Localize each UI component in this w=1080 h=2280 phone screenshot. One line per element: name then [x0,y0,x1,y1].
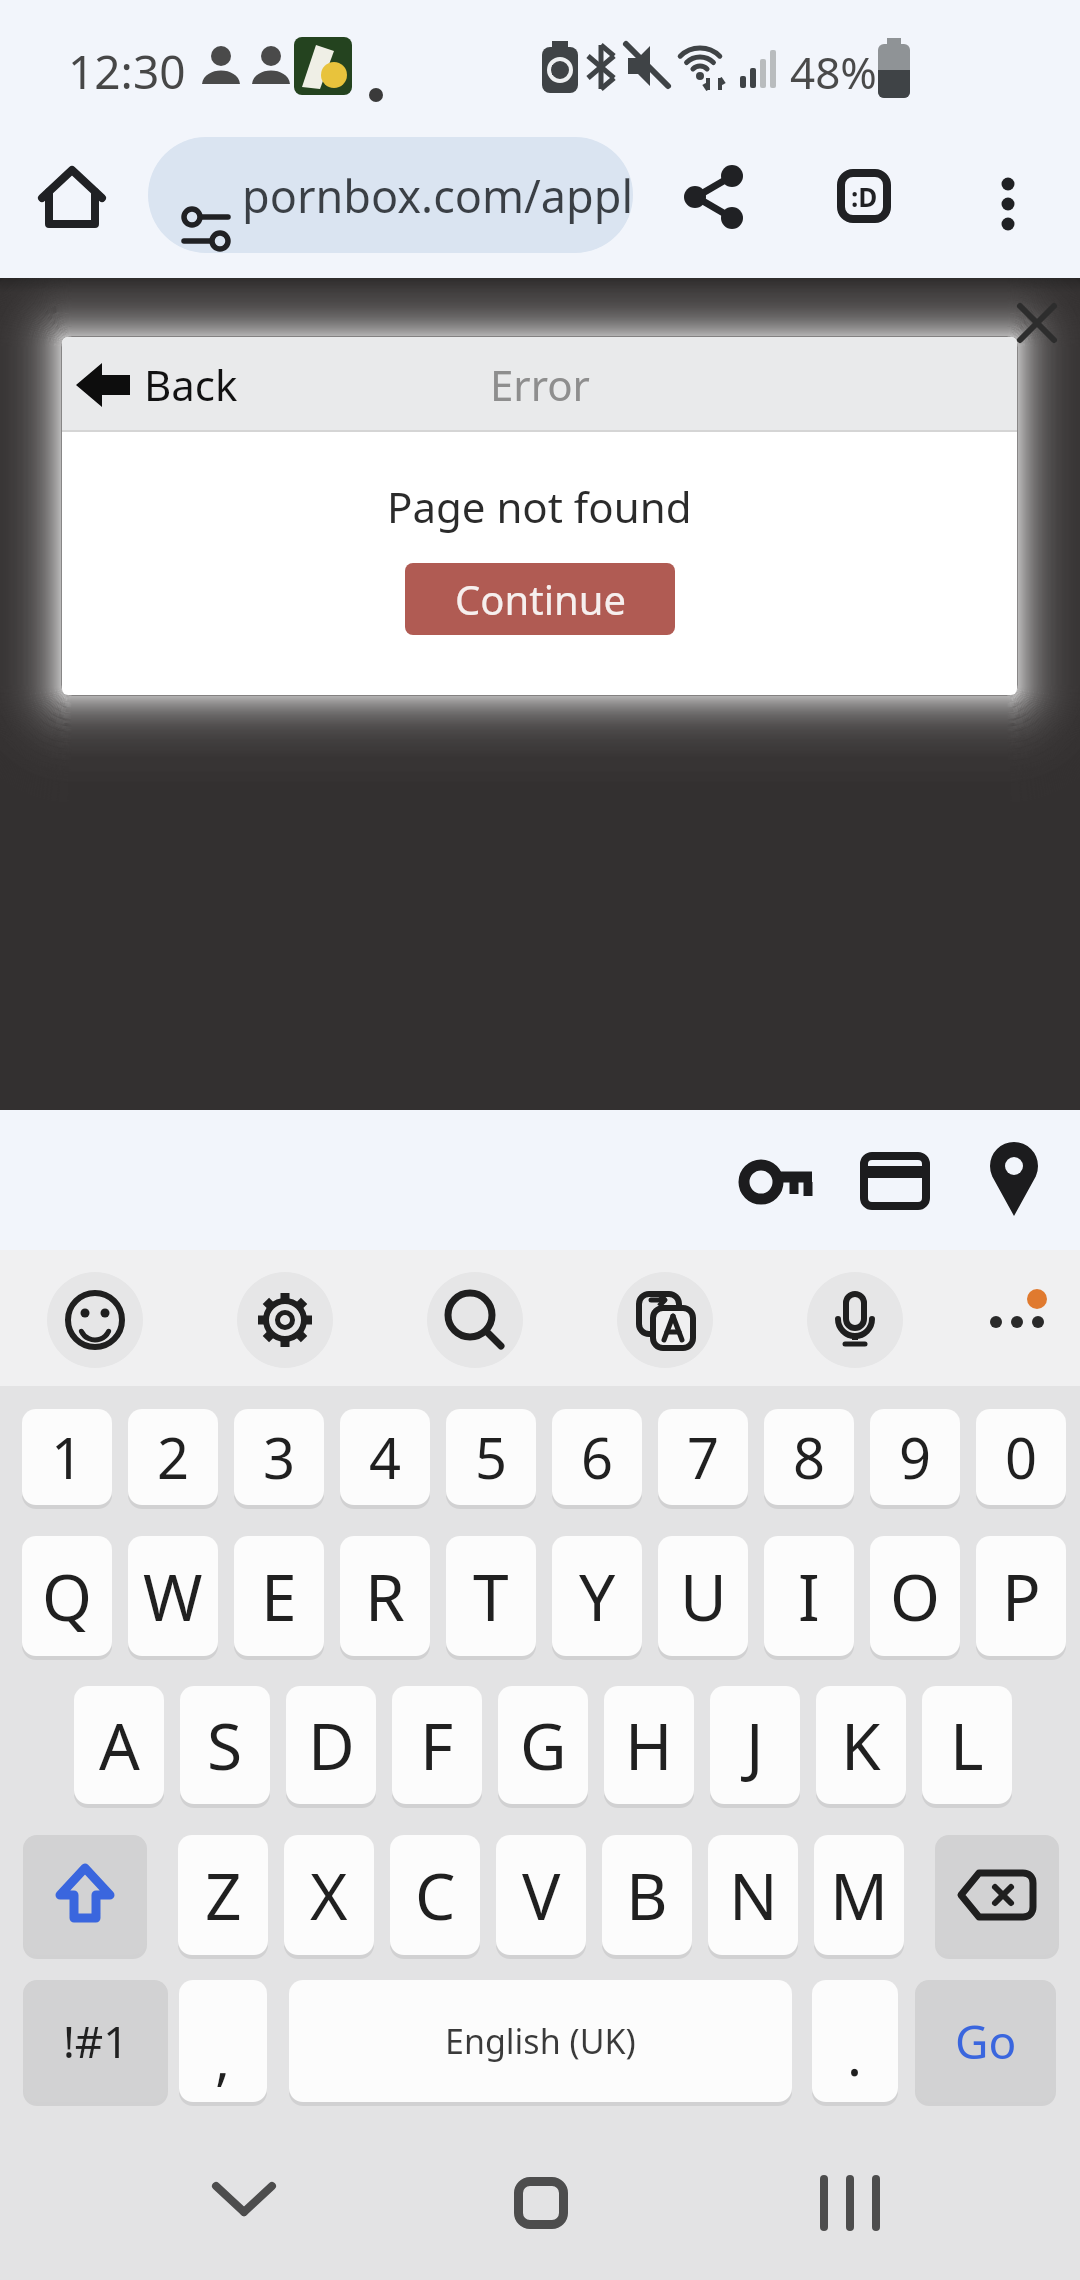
button[interactable] [36,160,108,232]
button[interactable]: 7 [658,1409,748,1505]
button[interactable]: Go [915,1980,1056,2102]
button[interactable]: 6 [552,1409,642,1505]
button[interactable] [975,1290,1065,1350]
staticText: H [625,1702,673,1789]
button[interactable]: 1 [22,1409,112,1505]
staticText: . [847,2016,863,2092]
button[interactable] [862,1146,934,1218]
button[interactable]: G [498,1686,588,1804]
button[interactable]: 0 [976,1409,1066,1505]
button[interactable]: . [812,1980,898,2102]
button[interactable]: Continue [405,563,675,635]
button[interactable]: F [392,1686,482,1804]
button[interactable] [514,2177,568,2229]
button[interactable]: pornbox.com/applica [148,137,633,253]
button[interactable]: 5 [446,1409,536,1505]
button[interactable] [820,2177,880,2229]
button[interactable] [23,1835,147,1955]
button[interactable]: V [496,1835,586,1955]
staticText: Z [205,1852,242,1939]
button[interactable] [427,1272,523,1368]
staticText: !#1 [63,2011,129,2071]
staticText: D [308,1702,355,1789]
button[interactable]: 8 [764,1409,854,1505]
staticText: B [626,1852,668,1939]
staticText: A [99,1702,140,1789]
button[interactable]: 9 [870,1409,960,1505]
button[interactable]: Back [76,337,238,432]
staticText: 8 [793,1419,826,1495]
button[interactable]: , [179,1980,267,2102]
button[interactable]: 3 [234,1409,324,1505]
button[interactable] [935,1835,1059,1955]
button[interactable] [237,1272,333,1368]
staticText: Go [955,2010,1017,2073]
button[interactable]: Q [22,1536,112,1656]
staticText: G [520,1702,567,1789]
staticText: U [680,1553,727,1640]
button[interactable] [617,1272,713,1368]
button[interactable]: X [284,1835,374,1955]
staticText: M [830,1852,889,1939]
staticText: 4 [369,1419,402,1495]
staticText: 7 [687,1419,720,1495]
staticText: I [798,1553,820,1640]
button[interactable]: D [286,1686,376,1804]
button[interactable] [744,1146,816,1218]
button[interactable] [807,1272,903,1368]
staticText: , [215,2020,231,2096]
staticText: Page not found [387,478,692,535]
button[interactable]: 2 [128,1409,218,1505]
button[interactable]: English (UK) [289,1980,792,2102]
button[interactable] [1014,300,1060,346]
button[interactable]: H [604,1686,694,1804]
button[interactable] [215,2185,273,2215]
button[interactable]: K [816,1686,906,1804]
staticText: 0 [1005,1419,1038,1495]
staticText: 48% [790,42,877,102]
button[interactable]: I [764,1536,854,1656]
button[interactable]: B [602,1835,692,1955]
staticText: Y [579,1553,616,1640]
button[interactable]: M [814,1835,904,1955]
button[interactable]: U [658,1536,748,1656]
staticText: 5 [475,1419,508,1495]
staticText: X [310,1852,348,1939]
button[interactable]: :D [837,169,891,223]
button[interactable]: !#1 [23,1980,168,2102]
button[interactable]: Z [178,1835,268,1955]
staticText: Q [42,1553,92,1640]
button[interactable]: W [128,1536,218,1656]
button[interactable] [684,166,744,228]
staticText: English (UK) [445,2018,636,2064]
staticText: Back [144,356,238,413]
staticText: C [415,1852,456,1939]
button[interactable]: L [922,1686,1012,1804]
staticText: F [420,1702,454,1789]
button[interactable]: E [234,1536,324,1656]
staticText: :D [851,179,878,214]
button[interactable]: C [390,1835,480,1955]
staticText: E [261,1553,297,1640]
button[interactable]: 4 [340,1409,430,1505]
button[interactable]: R [340,1536,430,1656]
button[interactable] [986,1140,1058,1220]
staticText: N [729,1852,778,1939]
staticText: L [950,1702,984,1789]
button[interactable]: P [976,1536,1066,1656]
button[interactable]: A [74,1686,164,1804]
staticText: V [522,1852,561,1939]
staticText: K [841,1702,881,1789]
button[interactable]: S [180,1686,270,1804]
staticText: S [207,1702,243,1789]
staticText: P [1002,1553,1041,1640]
staticText: J [746,1702,764,1789]
staticText: O [890,1553,940,1640]
button[interactable] [994,176,1022,236]
button[interactable]: O [870,1536,960,1656]
button[interactable]: Y [552,1536,642,1656]
button[interactable]: J [710,1686,800,1804]
button[interactable]: T [446,1536,536,1656]
button[interactable]: N [708,1835,798,1955]
button[interactable] [47,1272,143,1368]
